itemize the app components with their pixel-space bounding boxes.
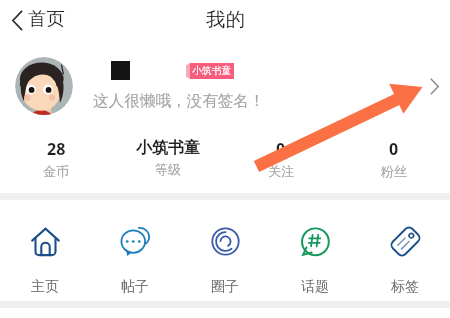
button[interactable]: 帖子 xyxy=(90,200,180,301)
button[interactable]: 话题 xyxy=(270,200,360,301)
button[interactable]: 主页 xyxy=(0,200,90,301)
button[interactable]: Edit profile xyxy=(421,66,447,106)
staticText: 这人很懒哦，没有签名！ xyxy=(93,91,265,111)
button[interactable]: 28 xyxy=(0,131,112,193)
staticText: 主页 xyxy=(31,278,59,296)
staticText: 0 xyxy=(389,138,399,160)
staticText: 28 xyxy=(47,138,66,160)
button[interactable]: 小筑书童 xyxy=(0,41,450,131)
staticText: 关注 xyxy=(268,163,294,179)
button[interactable]: 圈子 xyxy=(180,200,270,301)
button[interactable]: 首页 xyxy=(0,4,77,37)
staticText: 首页 xyxy=(28,7,65,30)
staticText: 帖子 xyxy=(121,278,149,296)
button[interactable]: 0 xyxy=(224,131,337,193)
staticText: 等级 xyxy=(155,161,181,177)
staticText: 标签 xyxy=(391,278,419,296)
button[interactable]: 标签 xyxy=(360,200,450,301)
staticText: 金币 xyxy=(43,163,69,179)
staticText: 0 xyxy=(276,138,286,160)
button[interactable]: 小筑书童 xyxy=(112,131,224,193)
staticText: 圈子 xyxy=(211,278,239,296)
staticText: 小筑书童 xyxy=(136,138,200,158)
button[interactable]: 0 xyxy=(337,131,450,193)
staticText: 我的 xyxy=(206,7,245,31)
staticText: 话题 xyxy=(301,278,329,296)
staticText: 小筑书童 xyxy=(192,65,232,77)
staticText: 粉丝 xyxy=(381,163,407,179)
